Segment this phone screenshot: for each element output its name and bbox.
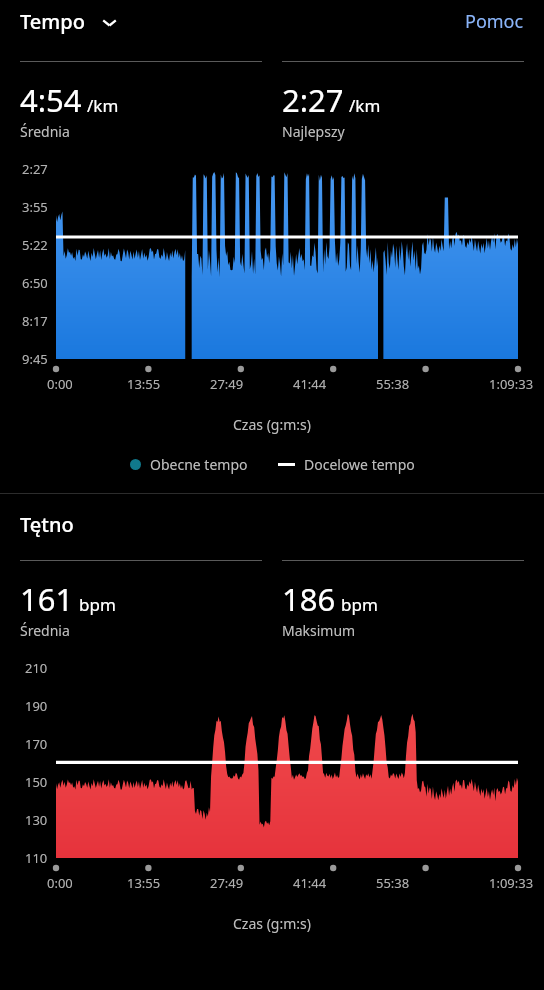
- staticText: 3:55: [22, 198, 48, 216]
- staticText: 170: [25, 735, 48, 753]
- staticText: Tętno: [20, 511, 74, 538]
- staticText: 161: [20, 578, 74, 620]
- staticText: 55:38: [376, 375, 410, 393]
- staticText: 0:00: [47, 874, 73, 892]
- staticText: bpm: [79, 593, 116, 616]
- staticText: 13:55: [127, 375, 161, 393]
- staticText: 190: [25, 697, 48, 715]
- button[interactable]: Pomoc: [465, 9, 524, 34]
- staticText: 8:17: [22, 312, 48, 330]
- staticText: Pomoc: [465, 9, 524, 34]
- staticText: Średnia: [20, 122, 70, 141]
- staticText: /km: [349, 94, 381, 117]
- staticText: 6:50: [22, 274, 48, 292]
- staticText: 1:09:33: [489, 375, 534, 393]
- staticText: 13:55: [127, 874, 161, 892]
- staticText: 55:38: [376, 874, 410, 892]
- staticText: Średnia: [20, 621, 70, 640]
- staticText: Czas (g:m:s): [233, 914, 311, 933]
- staticText: Tempo: [20, 8, 85, 35]
- staticText: Maksimum: [282, 621, 356, 640]
- staticText: Obecne tempo: [150, 455, 248, 474]
- staticText: 1:09:33: [489, 874, 534, 892]
- staticText: 5:22: [22, 236, 48, 254]
- staticText: 4:54: [20, 79, 82, 121]
- staticText: 0:00: [47, 375, 73, 393]
- staticText: 186: [282, 578, 336, 620]
- staticText: 9:45: [22, 350, 48, 368]
- staticText: bpm: [341, 593, 378, 616]
- staticText: 2:27: [282, 79, 344, 121]
- staticText: 27:49: [210, 874, 244, 892]
- staticText: 27:49: [210, 375, 244, 393]
- button[interactable]: Tempo: [20, 8, 119, 35]
- staticText: 210: [25, 659, 48, 677]
- other: Zmień wykres: [99, 12, 119, 32]
- staticText: 130: [25, 811, 48, 829]
- staticText: 2:27: [22, 160, 48, 178]
- staticText: Czas (g:m:s): [233, 415, 311, 434]
- staticText: /km: [87, 94, 119, 117]
- staticText: 41:44: [293, 874, 327, 892]
- staticText: Docelowe tempo: [304, 455, 415, 474]
- staticText: 110: [25, 849, 48, 867]
- staticText: Najlepszy: [282, 122, 345, 141]
- staticText: 41:44: [293, 375, 327, 393]
- staticText: 150: [25, 773, 48, 791]
